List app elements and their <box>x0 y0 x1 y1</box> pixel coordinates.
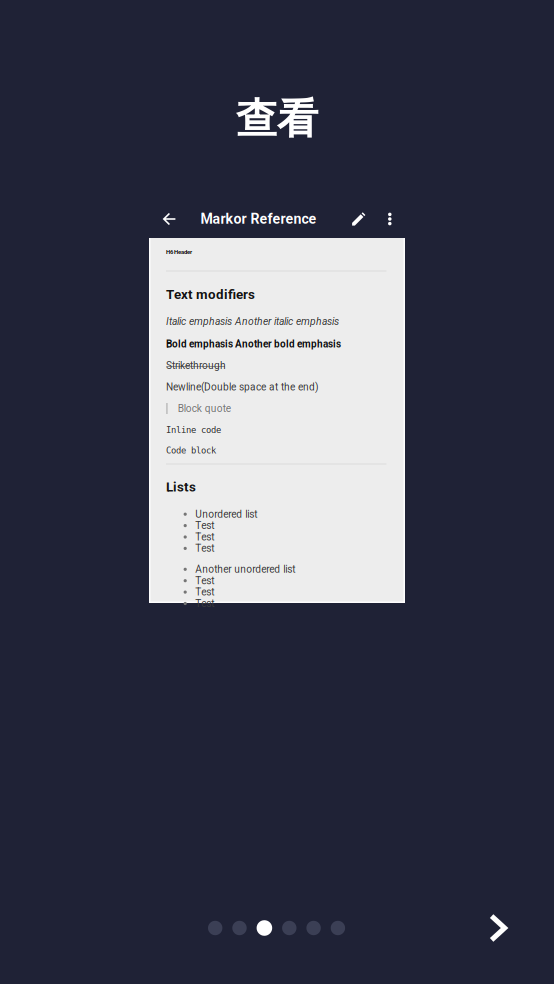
staticText: Lists <box>166 479 196 495</box>
staticText: H6 Header <box>166 249 192 255</box>
staticText: Test <box>195 531 214 543</box>
staticText: Another unordered list <box>195 563 295 575</box>
staticText: Test <box>195 586 214 598</box>
staticText: Block quote <box>178 403 231 414</box>
staticText: Test <box>195 598 214 609</box>
staticText: Strikethrough <box>166 360 226 371</box>
staticText: Code block <box>166 445 216 456</box>
button[interactable]: Next <box>473 902 523 954</box>
staticText: 查看 <box>236 93 318 145</box>
button[interactable]: More options <box>379 203 401 235</box>
staticText: Italic emphasis Another italic emphasis <box>166 315 339 327</box>
staticText: Markor Reference <box>200 211 316 227</box>
button[interactable]: Back <box>149 203 190 235</box>
staticText: Test <box>195 575 214 587</box>
button[interactable]: Edit <box>339 203 379 235</box>
staticText: Bold emphasis Another bold emphasis <box>166 338 341 350</box>
staticText: Text modifiers <box>166 287 255 302</box>
staticText: Unordered list <box>195 508 257 520</box>
staticText: Newline(Double space at the end) <box>166 381 319 393</box>
staticText: Inline code <box>166 425 221 435</box>
staticText: Test <box>195 542 214 554</box>
staticText: Test <box>195 520 214 532</box>
